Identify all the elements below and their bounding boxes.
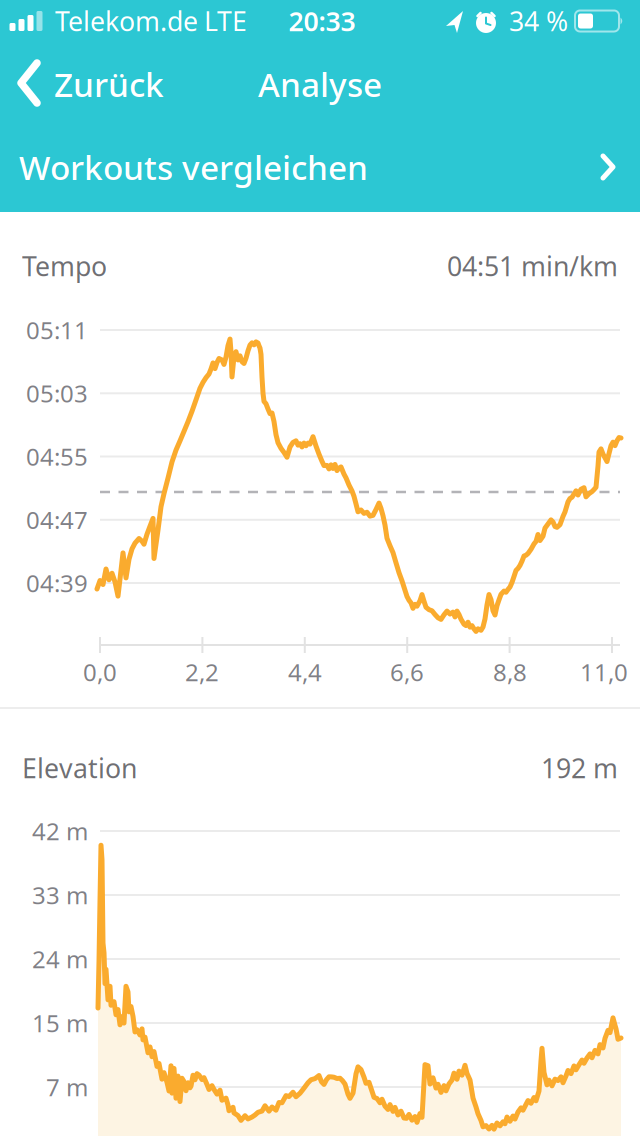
staticText: 20:33	[288, 3, 355, 39]
staticText: Tempo	[22, 248, 107, 284]
button[interactable]: Zurück	[0, 40, 230, 126]
staticText: 4,4	[288, 656, 322, 688]
staticText: 2,2	[185, 656, 219, 688]
staticText: 15 m	[32, 1007, 88, 1039]
staticText: 11,0	[580, 656, 628, 688]
staticText: LTE	[204, 3, 247, 39]
staticText: 8,8	[493, 656, 527, 688]
staticText: 0,0	[83, 656, 117, 688]
staticText: 33 m	[32, 879, 88, 911]
staticText: 6,6	[390, 656, 424, 688]
staticText: Workouts vergleichen	[19, 145, 368, 189]
staticText: 42 m	[32, 815, 88, 847]
staticText: 24 m	[32, 943, 88, 975]
staticText: 04:39	[26, 567, 88, 599]
staticText: Zurück	[54, 62, 164, 106]
staticText: Analyse	[258, 62, 382, 106]
staticText: 04:51 min/km	[447, 248, 618, 284]
staticText: 04:47	[26, 504, 88, 536]
staticText: Telekom.de	[55, 3, 198, 39]
staticText: 04:55	[26, 441, 88, 472]
staticText: 34 %	[509, 3, 568, 39]
staticText: 192 m	[541, 750, 618, 786]
staticText: 7 m	[46, 1071, 88, 1103]
staticText: 05:11	[26, 314, 88, 346]
staticText: 05:03	[26, 377, 88, 409]
button[interactable]: Workouts vergleichen	[0, 120, 640, 212]
staticText: Elevation	[22, 750, 137, 786]
